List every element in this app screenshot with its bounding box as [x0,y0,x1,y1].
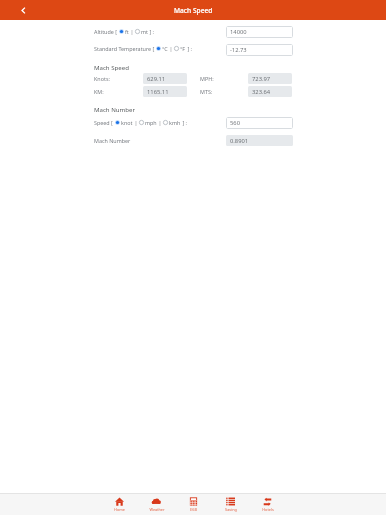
button[interactable]: °C [156,46,161,51]
staticText: 629.11 [147,75,166,83]
staticText: 1165.11 [147,88,169,96]
button[interactable]: 14000 [226,26,293,38]
staticText: MTS: [200,88,213,95]
staticText: ] : [181,119,188,126]
staticText: | [133,119,139,126]
staticText: Standard Temperature [ [94,45,156,52]
staticText: Knots: [94,75,110,82]
staticText: ] : [148,28,155,35]
button[interactable]: mph [139,120,144,125]
button[interactable]: 560 [226,117,293,129]
staticText: | [157,119,163,126]
staticText: | [168,45,174,52]
staticText: 723.97 [252,75,271,83]
staticText: -12.73 [230,46,247,54]
staticText: MPH: [200,75,214,82]
button[interactable]: Weather [138,494,175,515]
staticText: °C [162,45,168,52]
button[interactable]: ft [119,29,124,34]
button[interactable]: E6B [175,494,212,515]
staticText: 323.64 [252,88,271,96]
button[interactable]: mt [135,29,140,34]
staticText: ft [125,28,129,35]
staticText: E6B [190,507,197,512]
staticText: KM: [94,88,104,95]
staticText: Mach Number [94,137,131,144]
staticText: Altitude [ [94,28,119,35]
staticText: Mach Speed [174,6,213,15]
staticText: °F [180,45,186,52]
staticText: Home [114,507,125,512]
staticText: Speed [ [94,119,115,126]
button[interactable]: -12.73 [226,44,293,56]
staticText: 560 [230,119,240,127]
staticText: ] : [186,45,193,52]
button[interactable]: Hotels [249,494,286,515]
staticText: knot [121,119,133,126]
button[interactable]: knot [115,120,120,125]
staticText: mph [145,119,157,126]
staticText: Saving [225,507,237,512]
staticText: 14000 [230,28,247,36]
staticText: Hotels [262,507,274,512]
staticText: 0.8901 [230,137,249,145]
button[interactable]: Saving [212,494,249,515]
staticText: | [129,28,135,35]
button[interactable]: °F [174,46,179,51]
button[interactable]: Back [16,3,30,17]
staticText: kmh [169,119,181,126]
staticText: Weather [149,507,165,512]
staticText: mt [141,28,148,35]
staticText: Mach Speed [94,63,129,71]
button[interactable]: kmh [163,120,168,125]
staticText: Mach Number [94,105,136,113]
button[interactable]: Home [101,494,138,515]
